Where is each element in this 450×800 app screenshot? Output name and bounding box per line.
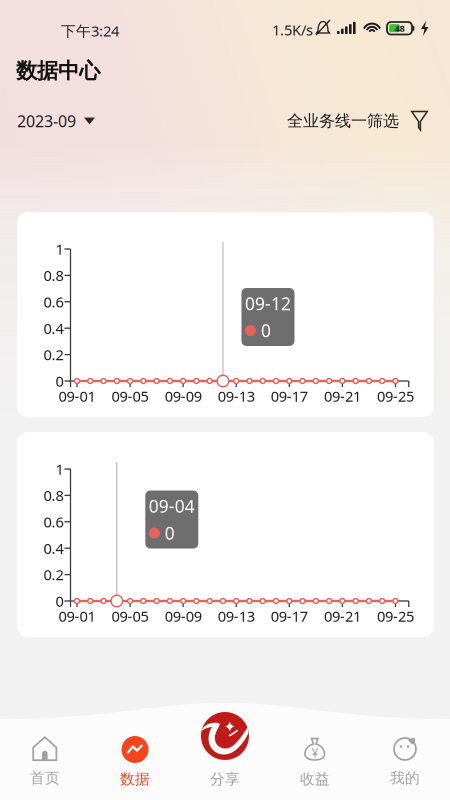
staticText: 0.4 — [43, 538, 63, 558]
button[interactable]: 我的 — [360, 696, 450, 800]
staticText: 09-01 — [58, 606, 95, 626]
staticText: 09-04 — [149, 494, 195, 517]
staticText: 0.8 — [43, 266, 63, 285]
staticText: 0.6 — [43, 292, 63, 312]
staticText: 我的 — [390, 769, 420, 787]
staticText: 0.6 — [43, 512, 63, 532]
staticText: 0.2 — [43, 345, 63, 364]
button[interactable]: 2023-09 — [0, 106, 95, 136]
staticText: 09-13 — [218, 386, 255, 406]
staticText: 09-21 — [324, 386, 361, 406]
staticText: 09-17 — [271, 606, 308, 626]
staticText: 09-21 — [324, 606, 361, 626]
staticText: ¥ — [311, 744, 318, 760]
staticText: 1 — [55, 239, 63, 259]
staticText: 0.4 — [43, 318, 63, 338]
staticText: 下午3:24 — [61, 21, 119, 40]
staticText: 0.8 — [43, 486, 63, 505]
staticText: 48 — [394, 22, 404, 34]
staticText: 0 — [261, 319, 271, 342]
staticText: 09-09 — [165, 606, 202, 626]
staticText: 09-01 — [58, 386, 95, 406]
button[interactable]: 首页 — [0, 696, 90, 800]
staticText: 1 — [55, 459, 63, 479]
staticText: 1.5K/s — [272, 20, 313, 39]
button[interactable]: 数据 — [90, 696, 180, 800]
staticText: 09-12 — [245, 292, 291, 315]
staticText: 分享 — [210, 770, 240, 788]
staticText: 2023-09 — [17, 110, 76, 132]
staticText: 收益 — [300, 770, 330, 788]
staticText: 0 — [55, 591, 63, 611]
staticText: 09-05 — [112, 606, 149, 626]
staticText: 数据 — [120, 770, 150, 788]
staticText: 09-17 — [271, 386, 308, 406]
staticText: 首页 — [30, 769, 60, 787]
staticText: 09-25 — [377, 386, 414, 406]
staticText: 0 — [55, 371, 63, 391]
staticText: 数据中心 — [16, 58, 100, 84]
staticText: 0 — [165, 521, 175, 544]
button[interactable]: 全业务线一筛选 — [287, 106, 450, 136]
staticText: 全业务线一筛选 — [287, 111, 399, 131]
staticText: 09-05 — [112, 386, 149, 406]
staticText: 0.2 — [43, 565, 63, 584]
staticText: 09-13 — [218, 606, 255, 626]
button[interactable]: ¥ — [270, 696, 360, 800]
button[interactable]: 分享 — [180, 696, 270, 800]
staticText: 09-25 — [377, 606, 414, 626]
staticText: 09-09 — [165, 386, 202, 406]
